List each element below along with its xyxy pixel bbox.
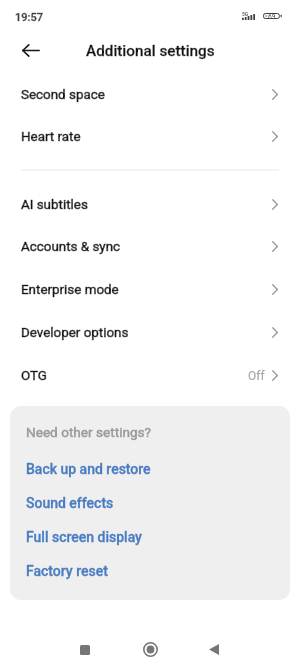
staticText: Developer options — [21, 325, 129, 341]
button[interactable]: Enterprise mode — [0, 268, 300, 311]
staticText: Accounts & sync — [21, 239, 121, 255]
staticText: Heart rate — [21, 129, 81, 145]
staticText: Factory reset — [26, 563, 108, 579]
button[interactable]: Heart rate — [0, 115, 300, 158]
button[interactable]: Home — [130, 630, 170, 668]
button[interactable]: Sound effects — [10, 486, 290, 520]
staticText: Back up and restore — [26, 461, 151, 477]
staticText: Need other settings? — [26, 424, 152, 440]
staticText: Sound effects — [26, 495, 114, 511]
button[interactable]: OTG — [0, 354, 300, 397]
staticText: Developer options — [21, 325, 129, 341]
staticText: Accounts & sync — [21, 239, 121, 255]
staticText: 69 — [268, 13, 276, 21]
staticText: Additional settings — [86, 42, 215, 60]
button[interactable]: Back — [10, 29, 52, 71]
staticText: Factory reset — [26, 563, 108, 579]
staticText: OTG — [21, 368, 47, 384]
button[interactable]: Full screen display — [10, 520, 290, 554]
button[interactable]: Developer options — [0, 311, 300, 354]
staticText: Full screen display — [26, 529, 142, 545]
staticText: Off — [248, 369, 265, 383]
staticText: Full screen display — [26, 529, 142, 545]
staticText: AI subtitles — [21, 197, 88, 213]
staticText: Additional settings — [86, 42, 215, 60]
staticText: 19:57 — [15, 11, 43, 24]
button[interactable]: Factory reset — [10, 554, 290, 588]
staticText: Back up and restore — [26, 461, 151, 477]
button[interactable]: Back up and restore — [10, 452, 290, 486]
staticText: AI subtitles — [21, 197, 88, 213]
staticText: Enterprise mode — [21, 282, 119, 298]
staticText: Second space — [21, 87, 105, 103]
staticText: Second space — [21, 87, 105, 103]
staticText: Sound effects — [26, 495, 114, 511]
staticText: Enterprise mode — [21, 282, 119, 298]
staticText: Need other settings? — [26, 424, 152, 440]
staticText: 19:57 — [15, 11, 43, 24]
button[interactable]: Accounts & sync — [0, 225, 300, 268]
button[interactable]: Back — [194, 630, 234, 668]
staticText: Heart rate — [21, 129, 81, 145]
button[interactable]: Second space — [0, 73, 300, 116]
staticText: 5G — [242, 11, 249, 17]
button[interactable]: Recent apps — [65, 631, 105, 668]
staticText: OTG — [21, 368, 47, 384]
button[interactable]: AI subtitles — [0, 183, 300, 226]
